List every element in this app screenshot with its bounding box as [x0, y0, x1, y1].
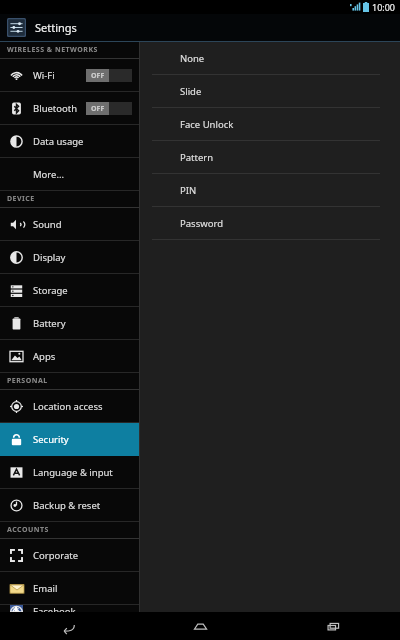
button[interactable]: Battery — [0, 307, 140, 339]
button[interactable]: Email — [0, 572, 140, 604]
button[interactable]: PIN — [140, 174, 400, 206]
button[interactable]: Pattern — [140, 141, 400, 173]
button[interactable]: Slide — [140, 75, 400, 107]
staticText: Bluetooth — [33, 102, 78, 115]
staticText: Corporate — [33, 549, 79, 562]
staticText: Slide — [180, 85, 202, 98]
staticText: Security — [33, 433, 69, 446]
staticText: Settings — [35, 20, 77, 35]
staticText: Password — [180, 217, 223, 230]
button[interactable]: Wi-Fi — [0, 59, 140, 91]
staticText: 10:00 — [372, 1, 396, 13]
button[interactable]: More... — [0, 158, 140, 190]
button[interactable]: Apps — [0, 340, 140, 372]
staticText: Storage — [33, 284, 68, 297]
button[interactable]: Back — [0, 612, 134, 640]
button[interactable]: Backup & reset — [0, 489, 140, 521]
button[interactable]: Face Unlock — [140, 108, 400, 140]
button[interactable]: Data usage — [0, 125, 140, 157]
button[interactable]: Display — [0, 241, 140, 273]
staticText: Pattern — [180, 151, 214, 164]
staticText: Data usage — [33, 135, 84, 148]
staticText: ACCOUNTS — [7, 525, 49, 535]
staticText: Face Unlock — [180, 118, 234, 131]
staticText: Location access — [33, 400, 103, 413]
button[interactable]: Recent apps — [267, 612, 400, 640]
button[interactable]: Home — [134, 612, 267, 640]
button[interactable]: Password — [140, 207, 400, 239]
staticText: PIN — [180, 184, 197, 197]
button[interactable]: None — [140, 42, 400, 74]
staticText: More... — [33, 168, 65, 181]
button[interactable]: Corporate — [0, 539, 140, 571]
button[interactable]: Facebook — [0, 605, 140, 612]
staticText: None — [180, 52, 205, 65]
staticText: Sound — [33, 218, 62, 231]
button[interactable]: Storage — [0, 274, 140, 306]
button[interactable]: Location access — [0, 390, 140, 422]
staticText: OFF — [91, 104, 105, 114]
staticText: Battery — [33, 317, 66, 330]
button[interactable]: Security — [0, 423, 140, 455]
button[interactable]: Settings home — [7, 16, 77, 39]
button[interactable]: Toggle off — [86, 69, 132, 82]
staticText: Language & input — [33, 466, 113, 479]
staticText: DEVICE — [7, 194, 35, 204]
button[interactable]: Language & input — [0, 456, 140, 488]
staticText: WIRELESS & NETWORKS — [7, 45, 98, 55]
staticText: OFF — [91, 71, 105, 81]
staticText: Facebook — [33, 605, 76, 612]
staticText: Wi-Fi — [33, 69, 55, 82]
staticText: Email — [33, 582, 58, 595]
button[interactable]: Toggle off — [86, 102, 132, 115]
staticText: Apps — [33, 350, 56, 363]
button[interactable]: Sound — [0, 208, 140, 240]
staticText: Display — [33, 251, 66, 264]
staticText: Backup & reset — [33, 499, 101, 512]
staticText: PERSONAL — [7, 376, 48, 386]
button[interactable]: Bluetooth — [0, 92, 140, 124]
